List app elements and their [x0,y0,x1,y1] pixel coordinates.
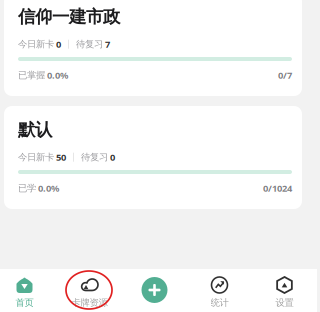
staticText: 信仰一建市政 [18,6,120,27]
staticText: 今日新卡 [18,38,54,50]
staticText: 已学 [18,182,36,194]
staticText: 首页 [15,297,33,308]
staticText: 统计 [210,297,228,308]
staticText: 今日新卡 [18,151,54,163]
staticText: 已掌握 [18,69,45,81]
button[interactable]: 设置 [252,269,317,312]
staticText: 0 [54,38,61,50]
button[interactable]: 卡牌资源 [57,269,122,312]
staticText: 0/7 [278,69,292,81]
staticText: 0/1024 [263,182,292,194]
staticText: 待复习 [81,151,108,163]
staticText: 7 [103,38,110,50]
staticText: 0.0% [45,69,68,81]
staticText: 50 [54,151,66,163]
staticText: 默认 [18,119,52,140]
staticText: 0.0% [36,182,59,194]
staticText: 待复习 [76,38,103,50]
button[interactable]: 首页 [0,269,57,312]
button[interactable]: 新建 [122,269,187,312]
staticText: 0 [108,151,115,163]
button[interactable]: 统计 [187,269,252,312]
staticText: 卡牌资源 [71,297,107,308]
staticText: 设置 [275,297,293,308]
